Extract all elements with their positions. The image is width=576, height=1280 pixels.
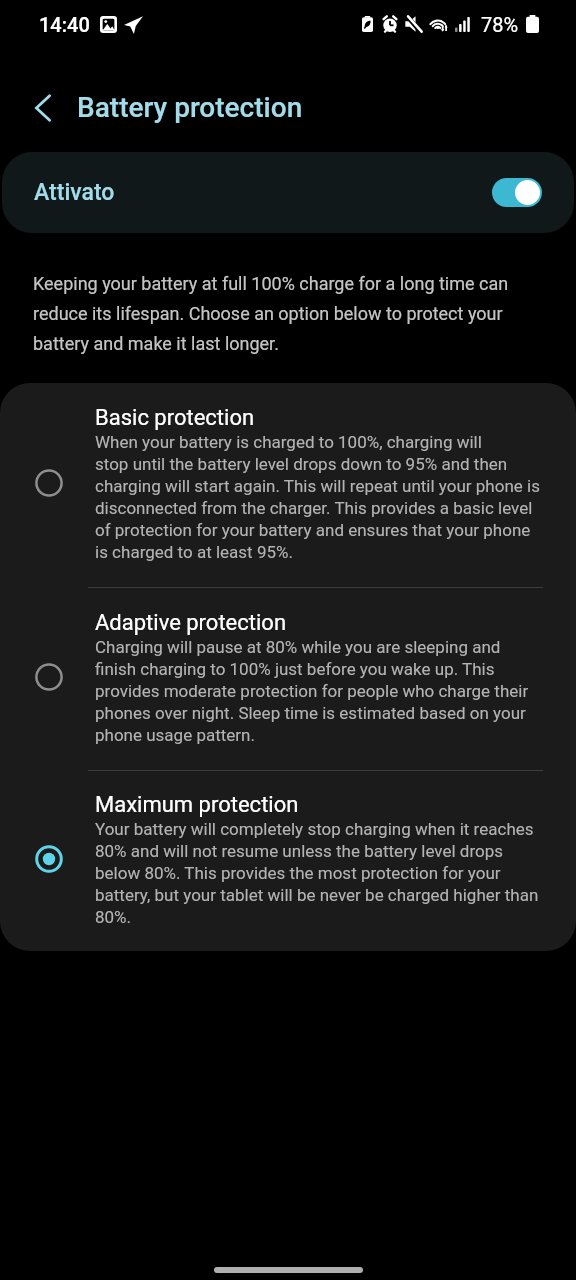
staticText: Attivato	[34, 179, 115, 206]
staticText: Charging will pause at 80% while you are…	[95, 635, 529, 745]
button[interactable]: Basic protection	[0, 383, 576, 587]
staticText: Battery protection	[77, 91, 303, 124]
staticText: When your battery is charged to 100%, ch…	[95, 430, 540, 562]
staticText: Your battery will completely stop chargi…	[95, 817, 539, 927]
staticText: Adaptive protection	[95, 609, 287, 635]
button[interactable]: Attivato	[2, 152, 574, 233]
button[interactable]: Adaptive protection	[0, 588, 576, 770]
staticText: Maximum protection	[95, 791, 299, 817]
button[interactable]: Maximum protection	[0, 771, 576, 951]
staticText: 14:40	[39, 13, 90, 36]
staticText: Keeping your battery at full 100% charge…	[33, 267, 573, 357]
staticText: 78%	[481, 13, 519, 36]
staticText: Basic protection	[95, 404, 255, 430]
button[interactable]: Back	[21, 82, 65, 134]
